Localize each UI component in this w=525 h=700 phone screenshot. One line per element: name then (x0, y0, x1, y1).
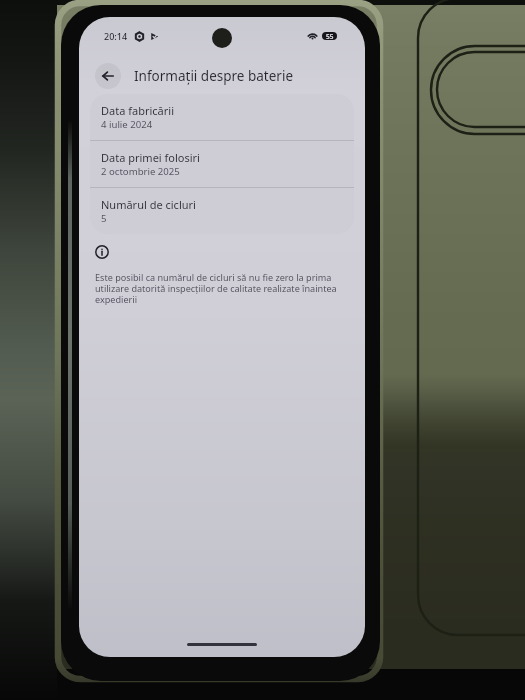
button[interactable]: Back (95, 63, 121, 89)
staticText: Este posibil ca numărul de cicluri să nu… (95, 271, 355, 305)
staticText: Data fabricării (101, 103, 174, 118)
button[interactable]: Data fabricării (90, 94, 354, 140)
button[interactable]: Data primei folosiri (90, 141, 354, 187)
staticText: 55 (326, 32, 334, 40)
button[interactable]: Numărul de cicluri (90, 188, 354, 234)
staticText: 2 octombrie 2025 (101, 165, 180, 178)
staticText: Numărul de cicluri (101, 197, 196, 212)
staticText: 20:14 (104, 30, 128, 42)
staticText: Data primei folosiri (101, 150, 200, 165)
staticText: 4 iulie 2024 (101, 118, 153, 131)
staticText: Informații despre baterie (134, 67, 294, 85)
staticText: 5 (101, 212, 107, 225)
